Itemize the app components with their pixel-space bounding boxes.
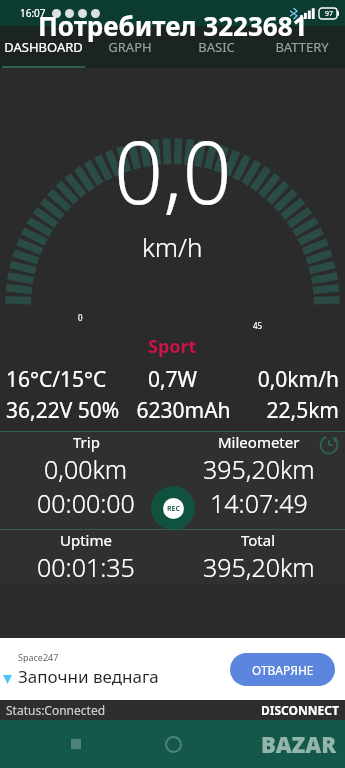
staticText: 00:01:35 [37,550,135,584]
staticText: 0,0km/h [221,365,339,394]
staticText: 0,0 [114,112,232,229]
staticText: 36,22V 50% [6,396,128,425]
staticText: BATTERY [275,38,329,56]
button[interactable]: Record [151,486,195,530]
staticText: 0 [78,312,83,323]
staticText: 16:07 [20,6,46,20]
button[interactable]: BASIC [173,26,259,68]
staticText: ОТВАРЯНЕ [252,662,314,678]
staticText: 00:00:00 [37,486,135,520]
staticText: Потребител 3223681 [38,8,308,43]
staticText: 16°C/15°C [6,365,124,394]
button[interactable]: Home [153,724,193,764]
staticText: REC [167,504,181,514]
button[interactable]: DASHBOARD [0,26,87,68]
button[interactable]: GRAPH [87,26,173,68]
staticText: Uptime [60,530,112,550]
staticText: GRAPH [108,38,152,56]
staticText: BASIC [198,38,235,56]
staticText: 22,5km [239,396,339,425]
button[interactable]: BATTERY [259,26,345,68]
staticText: 0,7W [124,365,221,394]
button[interactable]: Space247 [0,638,345,700]
button[interactable]: DISCONNECT [261,702,339,718]
staticText: 0,00km [44,452,128,486]
staticText: Mileometer [218,432,300,452]
staticText: km/h [142,229,203,264]
staticText: Total [241,530,276,550]
staticText: Sport [148,334,197,359]
staticText: 395,20km [203,452,315,486]
staticText: 14:07:49 [210,486,308,520]
button[interactable]: Reset history [319,435,339,455]
button[interactable]: ОТВАРЯНЕ [230,653,335,686]
staticText: Trip [73,432,100,452]
staticText: 395,20km [203,550,315,584]
staticText: Space247 [18,651,59,663]
staticText: DASHBOARD [4,38,83,56]
staticText: Започни веднага [18,665,159,688]
staticText: DISCONNECT [261,702,339,718]
staticText: Status:Connected [6,702,106,718]
staticText: 45 [253,320,263,331]
staticText: 6230mAh [128,396,239,425]
button[interactable]: Recents [56,724,96,764]
staticText: 97 [325,9,334,19]
staticText: BAZAR [261,729,337,759]
